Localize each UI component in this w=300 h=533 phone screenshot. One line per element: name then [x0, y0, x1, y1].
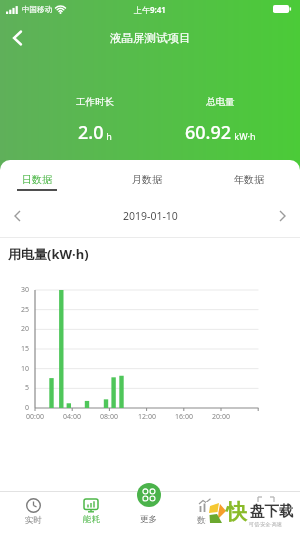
- button[interactable]: 年数据: [234, 173, 264, 186]
- button[interactable]: [137, 483, 161, 507]
- staticText: 10: [21, 364, 30, 374]
- staticText: 08:00: [100, 412, 118, 422]
- staticText: 日数据: [22, 173, 52, 186]
- staticText: 用电量(kW·h): [8, 245, 89, 263]
- staticText: 快: [226, 499, 247, 525]
- staticText: 00:00: [26, 412, 44, 422]
- button[interactable]: [279, 210, 286, 222]
- staticText: 实时: [25, 515, 42, 526]
- staticText: 12:00: [138, 412, 156, 422]
- staticText: 工作时长: [76, 96, 114, 108]
- staticText: 15: [21, 344, 30, 354]
- staticText: h: [104, 130, 112, 142]
- staticText: 20:00: [212, 412, 230, 422]
- staticText: 上午9:41: [134, 4, 166, 15]
- staticText: 更多: [140, 514, 157, 525]
- button[interactable]: 实时: [13, 498, 53, 526]
- button[interactable]: 数据: [185, 498, 225, 526]
- button[interactable]: 能耗: [71, 498, 111, 525]
- staticText: 2019-01-10: [123, 209, 178, 223]
- staticText: 60.92: [185, 120, 232, 145]
- staticText: 2.0: [78, 120, 104, 145]
- button[interactable]: 日数据: [17, 173, 57, 191]
- staticText: 盘下载: [250, 502, 294, 520]
- button[interactable]: [14, 210, 21, 222]
- button[interactable]: 月数据: [132, 173, 162, 186]
- staticText: 数据: [197, 515, 214, 526]
- staticText: 04:00: [63, 412, 81, 422]
- staticText: 30: [21, 285, 30, 295]
- staticText: 20: [21, 324, 30, 334]
- staticText: 可信·安全·高速: [249, 521, 282, 528]
- staticText: 0: [25, 403, 30, 413]
- staticText: 液晶屏测试项目: [110, 31, 191, 45]
- button[interactable]: [12, 30, 23, 46]
- staticText: 25: [21, 305, 30, 315]
- staticText: 16:00: [175, 412, 193, 422]
- staticText: 总电量: [206, 96, 235, 108]
- staticText: kW·h: [232, 130, 256, 142]
- staticText: 能耗: [83, 514, 100, 525]
- staticText: 中国移动: [22, 5, 52, 14]
- staticText: 5: [25, 383, 30, 393]
